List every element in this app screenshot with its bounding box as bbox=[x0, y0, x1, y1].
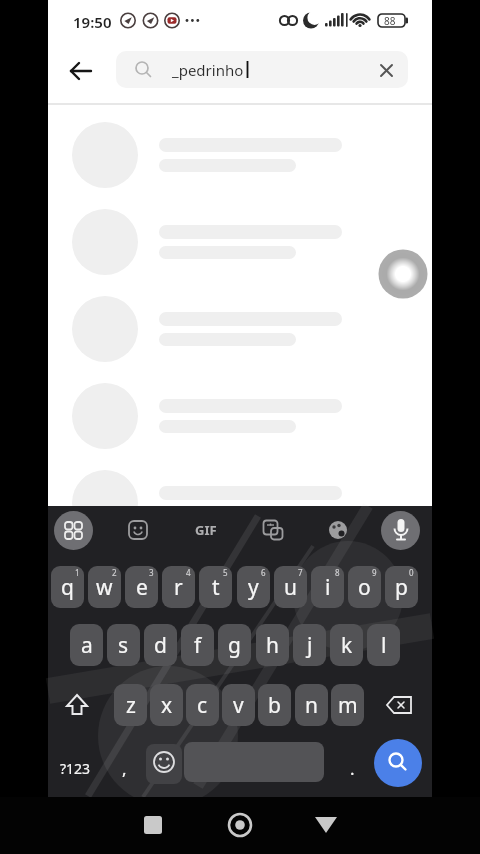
staticText: w bbox=[96, 573, 113, 602]
button[interactable] bbox=[305, 804, 347, 846]
staticText: r bbox=[174, 573, 183, 602]
staticText: u bbox=[284, 573, 297, 602]
staticText: 4 bbox=[186, 567, 191, 578]
button[interactable]: , bbox=[114, 750, 134, 786]
button[interactable]: . bbox=[342, 750, 362, 786]
staticText: z bbox=[126, 691, 136, 720]
button[interactable] bbox=[379, 684, 419, 726]
button[interactable] bbox=[219, 804, 261, 846]
staticText: f bbox=[194, 631, 202, 660]
staticText: 88 bbox=[384, 14, 396, 28]
staticText: c bbox=[197, 691, 208, 720]
button[interactable]: t bbox=[199, 566, 232, 608]
staticText: s bbox=[118, 631, 129, 660]
button[interactable]: u bbox=[274, 566, 307, 608]
staticText: i bbox=[325, 573, 331, 602]
staticText: b bbox=[268, 691, 281, 720]
staticText: k bbox=[341, 631, 353, 660]
button[interactable]: ?123 bbox=[52, 750, 98, 786]
button[interactable] bbox=[150, 748, 178, 776]
button[interactable]: k bbox=[330, 624, 363, 666]
button[interactable]: b bbox=[258, 684, 291, 726]
button[interactable]: c bbox=[186, 684, 219, 726]
button[interactable] bbox=[262, 519, 284, 541]
button[interactable]: e bbox=[125, 566, 158, 608]
button[interactable] bbox=[54, 511, 93, 550]
staticText: 2 bbox=[112, 567, 117, 578]
staticText: l bbox=[381, 631, 387, 660]
button[interactable] bbox=[184, 742, 324, 782]
staticText: d bbox=[154, 631, 167, 660]
button[interactable]: m bbox=[331, 684, 364, 726]
button[interactable]: j bbox=[293, 624, 326, 666]
staticText: h bbox=[266, 631, 279, 660]
button[interactable]: f bbox=[181, 624, 214, 666]
button[interactable]: _pedrinho bbox=[116, 51, 408, 88]
button[interactable]: w bbox=[88, 566, 121, 608]
staticText: t bbox=[212, 573, 220, 602]
staticText: o bbox=[358, 573, 371, 602]
staticText: 8 bbox=[335, 567, 340, 578]
staticText: 9 bbox=[372, 567, 377, 578]
button[interactable] bbox=[369, 53, 404, 86]
staticText: x bbox=[161, 691, 173, 720]
button[interactable]: d bbox=[144, 624, 177, 666]
button[interactable]: x bbox=[150, 684, 183, 726]
staticText: 1 bbox=[75, 567, 80, 578]
staticText: ?123 bbox=[60, 759, 91, 778]
staticText: _pedrinho bbox=[172, 60, 244, 80]
button[interactable]: g bbox=[218, 624, 251, 666]
button[interactable]: z bbox=[114, 684, 147, 726]
button[interactable]: r bbox=[162, 566, 195, 608]
staticText: j bbox=[307, 631, 313, 660]
button[interactable]: o bbox=[348, 566, 381, 608]
button[interactable] bbox=[378, 249, 428, 299]
staticText: q bbox=[61, 573, 74, 602]
staticText: m bbox=[338, 691, 358, 720]
button[interactable]: p bbox=[385, 566, 418, 608]
staticText: , bbox=[122, 757, 127, 780]
button[interactable]: y bbox=[237, 566, 270, 608]
button[interactable] bbox=[127, 519, 149, 541]
button[interactable]: GIF bbox=[190, 516, 222, 544]
staticText: g bbox=[228, 631, 241, 660]
button[interactable] bbox=[374, 739, 422, 787]
button[interactable] bbox=[132, 804, 174, 846]
staticText: n bbox=[305, 691, 318, 720]
button[interactable]: h bbox=[256, 624, 289, 666]
button[interactable]: l bbox=[367, 624, 400, 666]
button[interactable]: q bbox=[51, 566, 84, 608]
button[interactable]: s bbox=[107, 624, 140, 666]
staticText: GIF bbox=[195, 521, 217, 539]
button[interactable] bbox=[327, 519, 349, 541]
staticText: 0 bbox=[409, 567, 414, 578]
button[interactable]: v bbox=[222, 684, 255, 726]
staticText: 6 bbox=[261, 567, 266, 578]
staticText: e bbox=[136, 573, 148, 602]
button[interactable] bbox=[389, 514, 413, 546]
staticText: v bbox=[233, 691, 244, 720]
staticText: 5 bbox=[223, 567, 228, 578]
button[interactable]: n bbox=[295, 684, 328, 726]
button[interactable]: i bbox=[311, 566, 344, 608]
staticText: a bbox=[81, 631, 93, 660]
staticText: p bbox=[395, 573, 408, 602]
staticText: y bbox=[248, 573, 259, 602]
staticText: 7 bbox=[298, 567, 303, 578]
staticText: . bbox=[350, 757, 355, 780]
staticText: 3 bbox=[149, 567, 154, 578]
button[interactable] bbox=[63, 53, 99, 89]
button[interactable] bbox=[57, 684, 97, 726]
button[interactable]: a bbox=[70, 624, 103, 666]
staticText: 19:50 bbox=[73, 12, 112, 32]
